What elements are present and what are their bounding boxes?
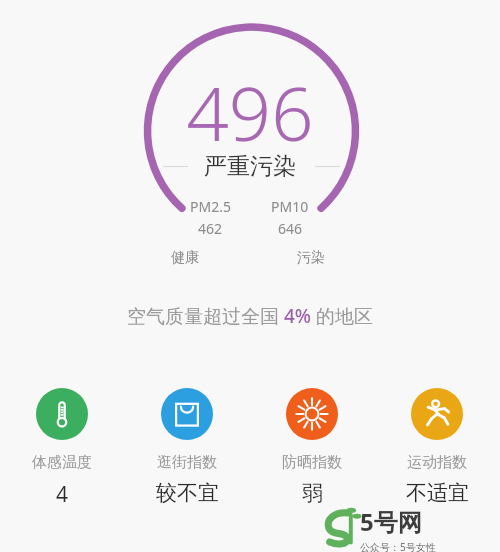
staticText: 不适宜 [406,480,469,506]
staticText: 严重污染 [0,152,500,181]
staticText: PM2.5 [190,197,231,216]
staticText: 较不宜 [156,480,219,506]
button[interactable]: 运动指数 [387,388,487,506]
staticText: 弱 [302,480,323,506]
staticText: 公众号：5号女性 [360,540,436,552]
staticText: 4 [56,480,69,509]
button[interactable]: 体感温度 [12,388,112,509]
staticText: 462 [198,219,223,238]
staticText: 646 [278,219,303,238]
button[interactable]: 逛街指数 [137,388,237,506]
staticText: 污染 [297,249,325,267]
staticText: PM10 [271,197,309,216]
staticText: 逛街指数 [157,453,217,472]
staticText: 496 [0,62,500,163]
staticText: 运动指数 [407,453,467,472]
staticText: 空气质量超过全国 4% 的地区 [127,303,373,329]
staticText: 防晒指数 [282,453,342,472]
staticText: 5号网 [360,505,422,538]
staticText: 体感温度 [32,453,92,472]
staticText: 健康 [171,249,199,267]
button[interactable]: 防晒指数 [262,388,362,506]
